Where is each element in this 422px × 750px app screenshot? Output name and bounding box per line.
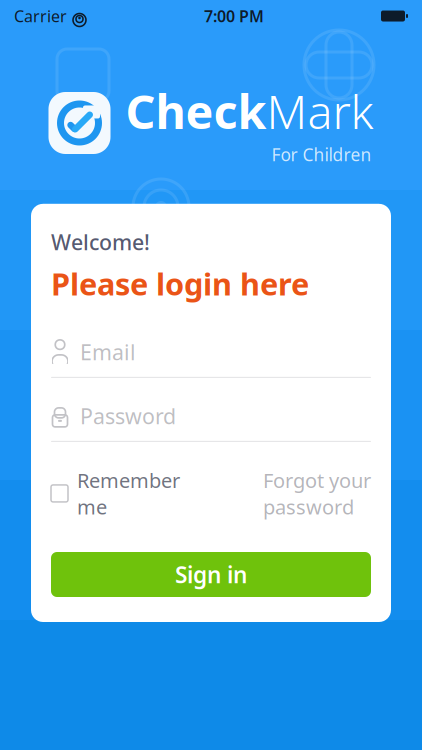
staticText: 24 <box>326 537 356 573</box>
staticText: Welcome! <box>51 228 150 256</box>
staticText: Email <box>80 338 136 366</box>
staticText: Password <box>80 402 176 430</box>
staticText: Mark <box>266 80 373 142</box>
staticText: Sign in <box>175 559 247 589</box>
staticText: Check <box>125 80 266 142</box>
button[interactable]: Forgot your password <box>263 467 371 520</box>
staticText: For Children <box>271 143 371 166</box>
button[interactable]: Remember me <box>51 467 180 520</box>
staticText: Remember me <box>77 467 180 520</box>
staticText: 7:00 PM <box>204 5 264 27</box>
button[interactable]: Sign in <box>51 552 371 597</box>
staticText: Please login here <box>51 263 309 304</box>
staticText: Forgot your password <box>263 467 371 520</box>
staticText: Carrier <box>14 5 67 27</box>
